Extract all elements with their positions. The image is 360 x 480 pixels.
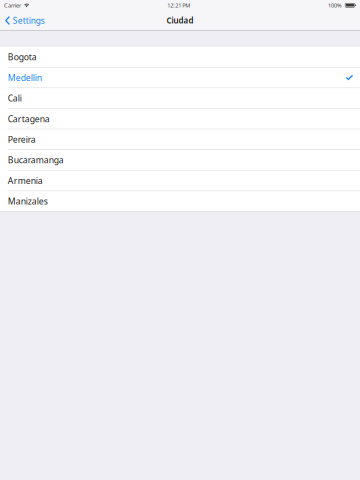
staticText: Ciudad	[166, 15, 193, 26]
staticText: Pereira	[8, 133, 36, 145]
button[interactable]: Bucaramanga	[0, 150, 360, 171]
button[interactable]: Bogota	[0, 47, 360, 68]
button[interactable]: Pereira	[0, 129, 360, 150]
staticText: Carrier	[4, 1, 21, 9]
staticText: 12:21 PM	[167, 1, 190, 9]
staticText: Settings	[13, 15, 45, 26]
staticText: Armenia	[8, 175, 43, 186]
button[interactable]: Armenia	[0, 171, 360, 191]
button[interactable]: Manizales	[0, 191, 360, 212]
button[interactable]: Settings	[0, 10, 51, 30]
staticText: Cartagena	[8, 113, 50, 125]
staticText: Bucaramanga	[8, 154, 64, 166]
staticText: Medellin	[8, 72, 42, 83]
button[interactable]: Cali	[0, 88, 360, 109]
staticText: 100%	[328, 1, 342, 9]
button[interactable]: Cartagena	[0, 109, 360, 129]
staticText: Manizales	[8, 195, 48, 207]
staticText: Cali	[8, 92, 22, 104]
staticText: Bogota	[8, 51, 37, 63]
button[interactable]: Medellin	[0, 68, 360, 88]
